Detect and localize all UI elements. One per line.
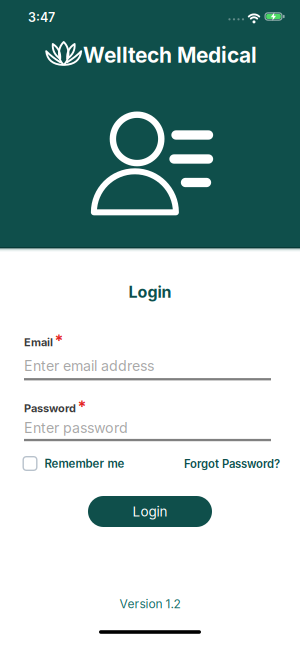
staticText: Enter email address (24, 357, 154, 374)
staticText: * (77, 397, 86, 416)
staticText: Login (128, 282, 171, 302)
button[interactable]: Remember me (22, 456, 124, 471)
staticText: Remember me (44, 456, 124, 470)
staticText: * (54, 331, 63, 350)
staticText: Email (24, 335, 53, 349)
staticText: Login (132, 503, 167, 520)
button[interactable]: Password, text field (24, 419, 271, 441)
staticText: Version 1.2 (119, 597, 180, 611)
button[interactable]: Email, text field (24, 357, 271, 380)
button[interactable]: Forgot Password? (184, 457, 280, 471)
staticText: 3:47 (28, 10, 55, 25)
staticText: Password (24, 401, 76, 415)
staticText: Forgot Password? (184, 457, 280, 471)
button[interactable]: Login (88, 496, 212, 527)
staticText: Welltech Medical (83, 42, 257, 68)
staticText: Enter password (24, 419, 128, 436)
